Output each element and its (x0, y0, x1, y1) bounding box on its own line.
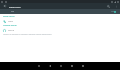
staticText: A2DP (8, 20, 13, 23)
button[interactable]: Search (104, 3, 113, 9)
button[interactable]: Home (55, 62, 66, 70)
button[interactable]: On (0, 9, 120, 14)
staticText: MM-10 (8, 29, 15, 32)
button[interactable]: A2DP (0, 19, 120, 24)
button[interactable]: Menu (33, 62, 44, 70)
staticText: Bluetooth (9, 5, 21, 8)
button[interactable]: Recent apps (66, 62, 77, 70)
button[interactable]: MM-10 (0, 28, 120, 33)
staticText: Paired devices (3, 15, 15, 17)
button[interactable]: Back (44, 62, 55, 70)
button[interactable]: Screenshot (77, 62, 88, 70)
staticText: Available devices (3, 24, 17, 26)
button[interactable]: Navigate up (0, 3, 9, 9)
staticText: On (11, 10, 15, 13)
button[interactable]: More options (113, 3, 120, 9)
staticText: Nexus is visible to nearby devices while… (3, 33, 52, 36)
